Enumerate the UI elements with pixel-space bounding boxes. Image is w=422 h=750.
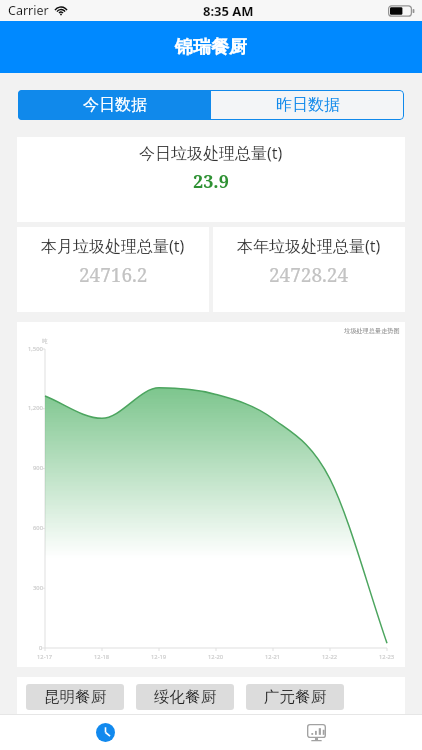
staticText: 吨 bbox=[42, 338, 48, 345]
staticText: 12-18 bbox=[94, 653, 110, 661]
staticText: 今日数据 bbox=[83, 95, 147, 115]
staticText: 昨日数据 bbox=[276, 95, 340, 115]
staticText: 600 bbox=[33, 524, 43, 532]
staticText: 24728.24 bbox=[269, 262, 349, 288]
button[interactable]: 昆明餐厨 bbox=[26, 684, 124, 710]
staticText: 24716.2 bbox=[79, 262, 148, 288]
staticText: 垃圾处理总量走势图 bbox=[344, 327, 400, 335]
staticText: 12-19 bbox=[151, 653, 167, 661]
staticText: 900 bbox=[33, 464, 43, 472]
staticText: 23.9 bbox=[193, 169, 229, 194]
staticText: 0 bbox=[39, 644, 43, 652]
staticText: 1,200 bbox=[28, 404, 43, 412]
staticText: 8:35 AM bbox=[203, 2, 254, 20]
staticText: 12-21 bbox=[265, 653, 281, 661]
staticText: 12-23 bbox=[379, 653, 395, 661]
staticText: 12-17 bbox=[37, 653, 53, 661]
button[interactable]: 广元餐厨 bbox=[246, 684, 344, 710]
button[interactable]: 统计分析 bbox=[211, 715, 422, 750]
staticText: 锦瑞餐厨 bbox=[175, 36, 247, 59]
button[interactable]: 绥化餐厨 bbox=[136, 684, 234, 710]
staticText: 1,500 bbox=[28, 345, 43, 353]
staticText: Carrier bbox=[8, 2, 49, 19]
staticText: 广元餐厨 bbox=[264, 687, 326, 707]
staticText: 本月垃圾处理总量(t) bbox=[41, 235, 185, 257]
staticText: 12-20 bbox=[208, 653, 224, 661]
staticText: 12-22 bbox=[322, 653, 338, 661]
staticText: 绥化餐厨 bbox=[154, 687, 216, 707]
button[interactable]: 昨日数据 bbox=[211, 90, 404, 120]
staticText: 今日垃圾处理总量(t) bbox=[139, 142, 283, 164]
staticText: 昆明餐厨 bbox=[44, 687, 106, 707]
button[interactable]: 今日数据 bbox=[18, 90, 211, 120]
staticText: 本年垃圾处理总量(t) bbox=[237, 235, 381, 257]
staticText: 300 bbox=[33, 584, 43, 592]
button[interactable]: 实时数据 bbox=[0, 715, 211, 750]
